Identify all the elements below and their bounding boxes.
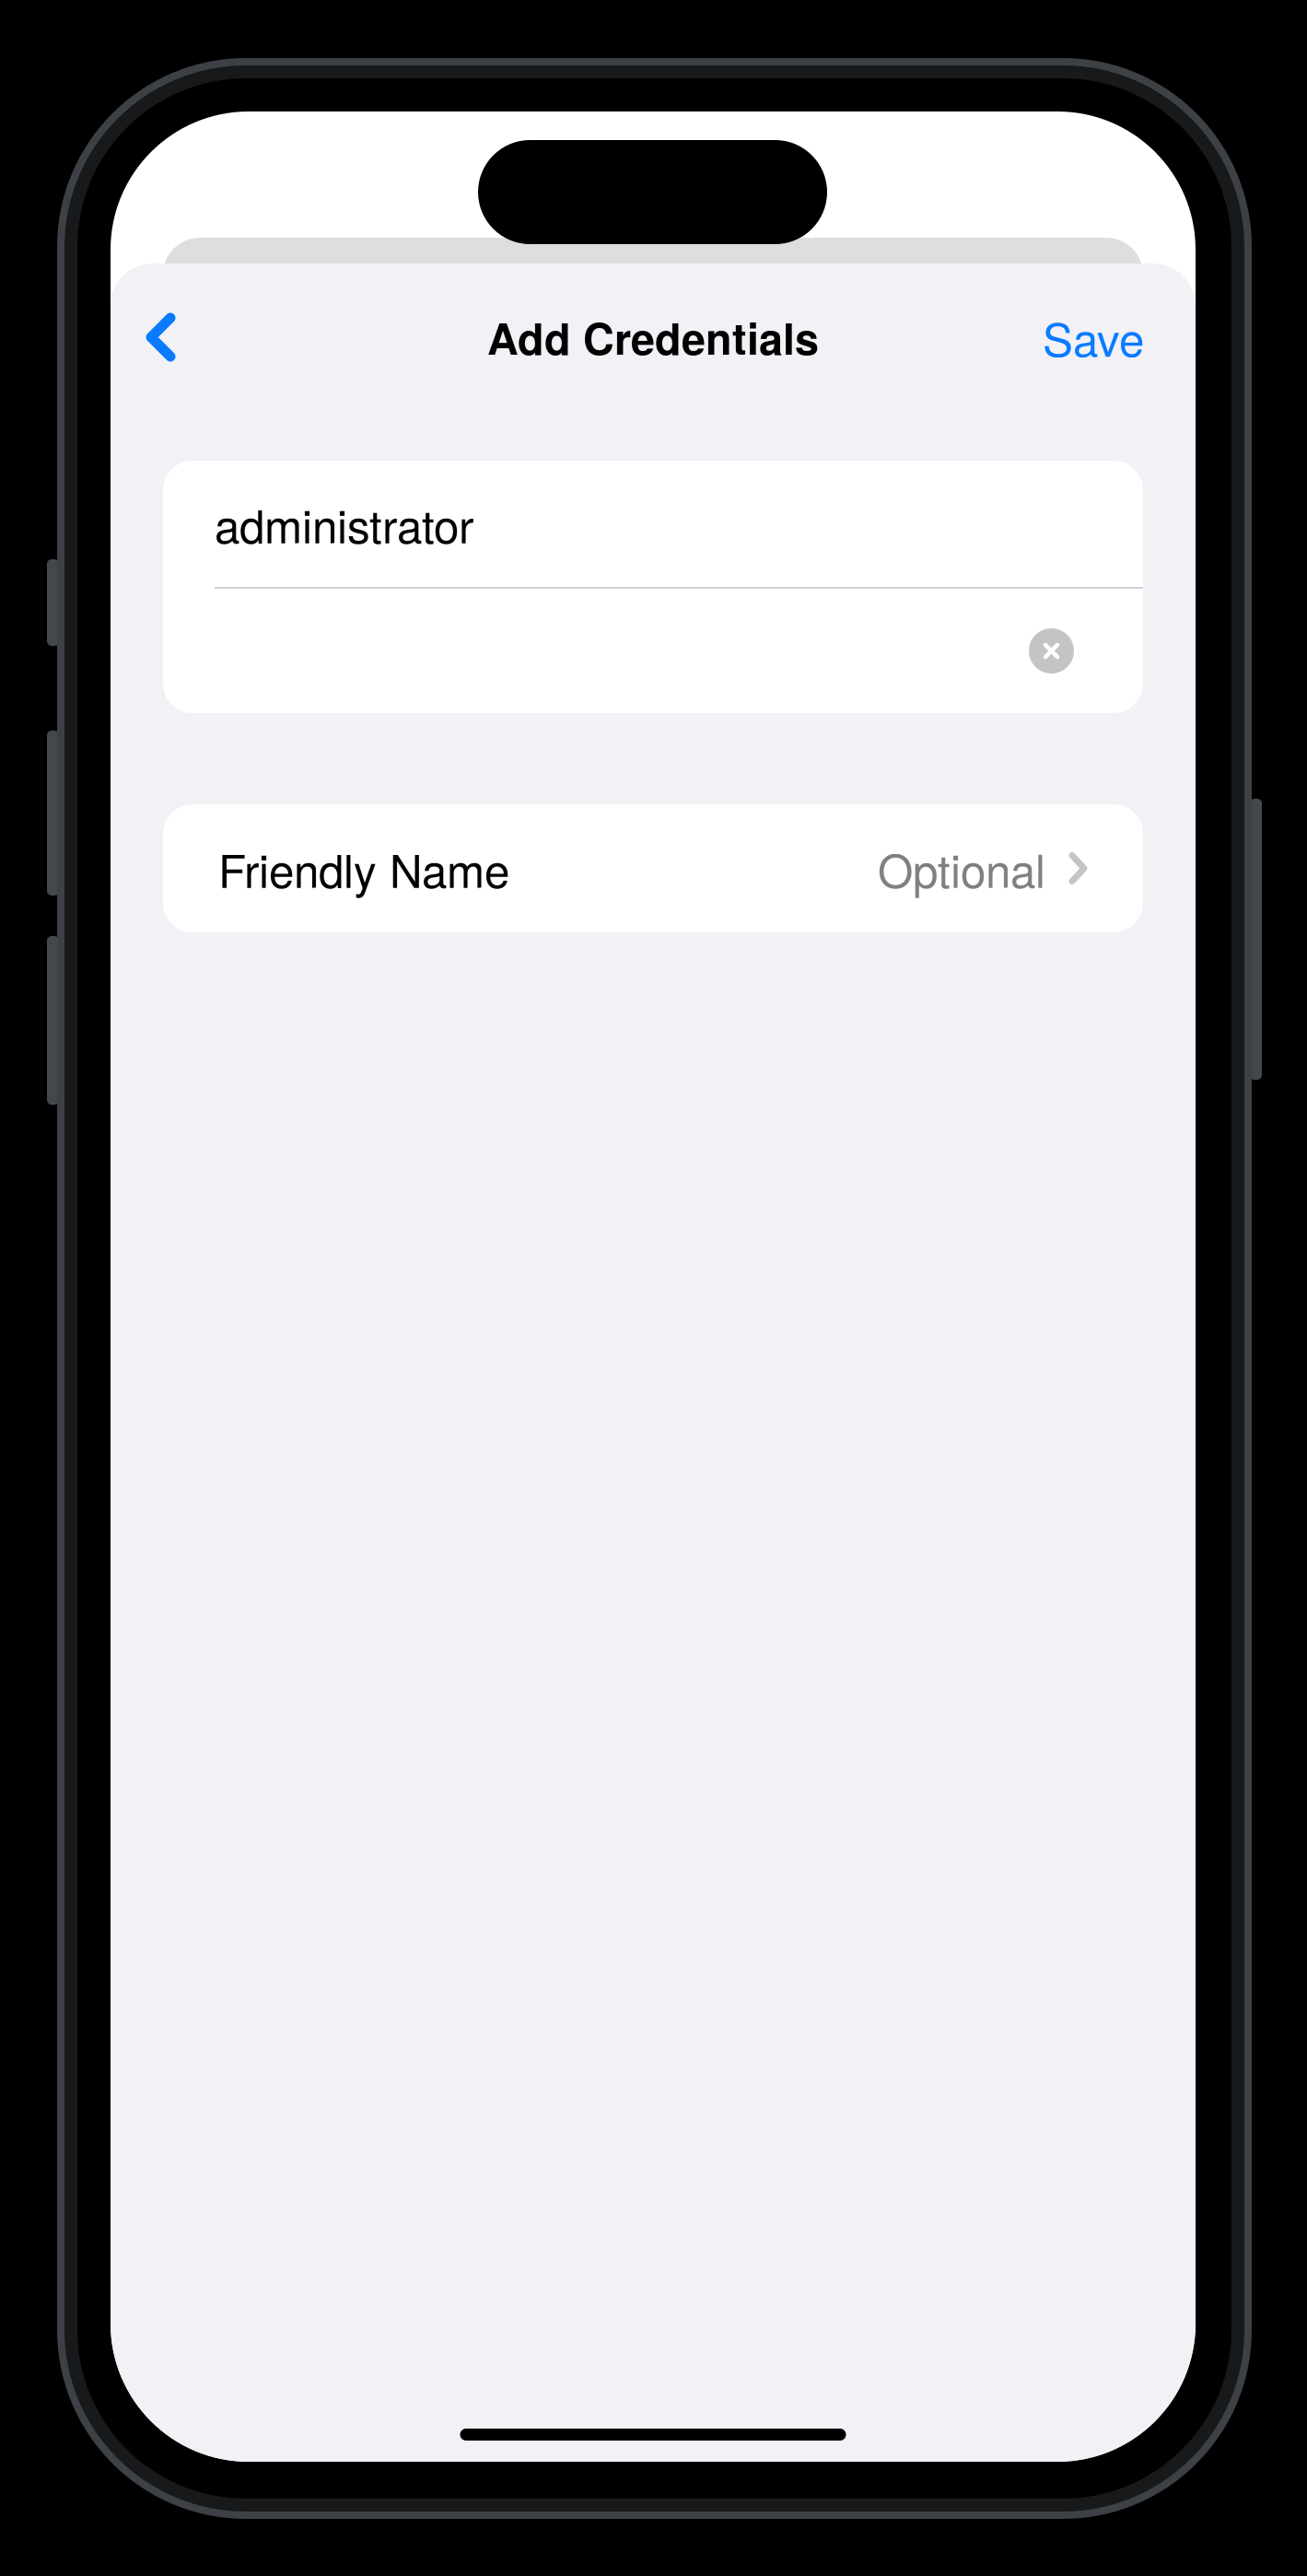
staticText: administrator	[215, 491, 473, 556]
staticText: Add Credentials	[487, 306, 819, 368]
button[interactable]: Friendly Name	[163, 804, 1143, 932]
staticText: Friendly Name	[218, 836, 509, 901]
button[interactable]: Clear password	[163, 589, 1143, 713]
button[interactable]: Back	[146, 289, 234, 385]
staticText: Save	[1043, 305, 1144, 370]
button[interactable]: administrator	[163, 461, 1143, 587]
button[interactable]: Save	[1043, 289, 1144, 385]
staticText: Optional	[878, 836, 1045, 901]
